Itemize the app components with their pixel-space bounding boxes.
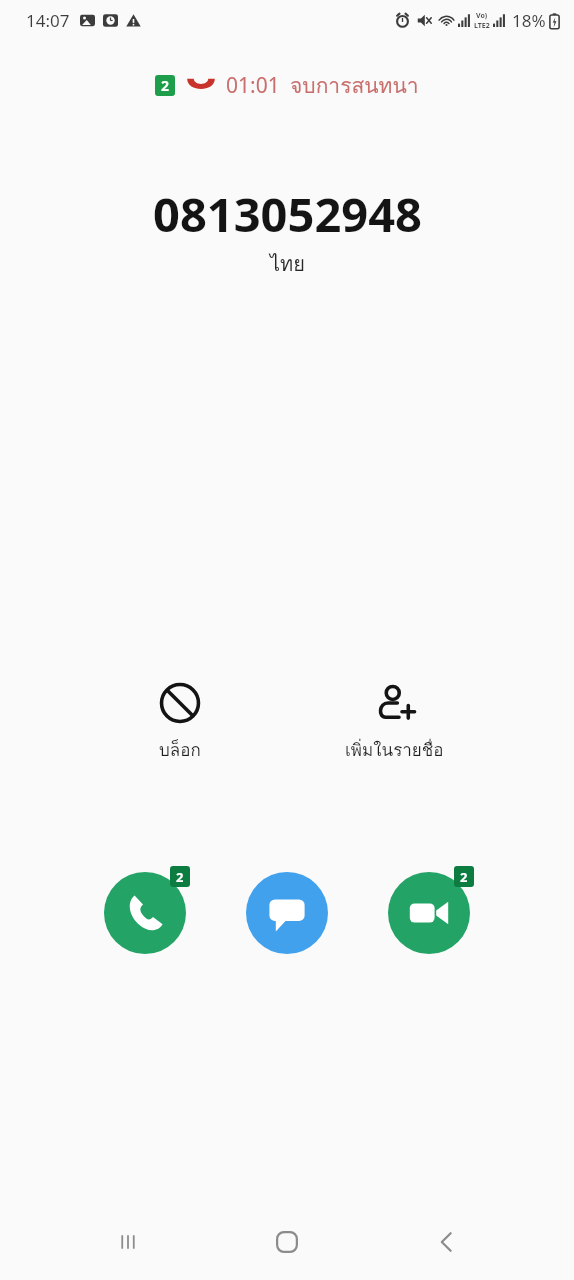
staticText: 0813052948 <box>153 182 422 246</box>
button[interactable]: เพิ่มในรายชื่อ <box>334 678 454 767</box>
button[interactable]: Call <box>104 872 186 954</box>
button[interactable]: Home <box>255 1210 319 1274</box>
button[interactable]: Video call <box>388 872 470 954</box>
staticText: 14:07 <box>26 9 70 32</box>
staticText: 2 <box>176 868 184 886</box>
staticText: Vo) <box>476 11 488 21</box>
staticText: 01:01 <box>226 71 280 100</box>
button[interactable]: Recents <box>96 1210 160 1274</box>
staticText: ไทย <box>270 248 305 280</box>
button[interactable]: Message <box>246 872 328 954</box>
staticText: บล็อก <box>159 736 201 763</box>
staticText: 18% <box>512 9 546 32</box>
staticText: 2 <box>460 868 468 886</box>
staticText: LTE2 <box>474 21 490 31</box>
staticText: 2 <box>161 76 170 95</box>
staticText: จบการสนทนา <box>290 69 419 102</box>
button[interactable]: บล็อก <box>130 678 230 767</box>
staticText: เพิ่มในรายชื่อ <box>345 736 444 763</box>
button[interactable]: Back <box>415 1210 479 1274</box>
